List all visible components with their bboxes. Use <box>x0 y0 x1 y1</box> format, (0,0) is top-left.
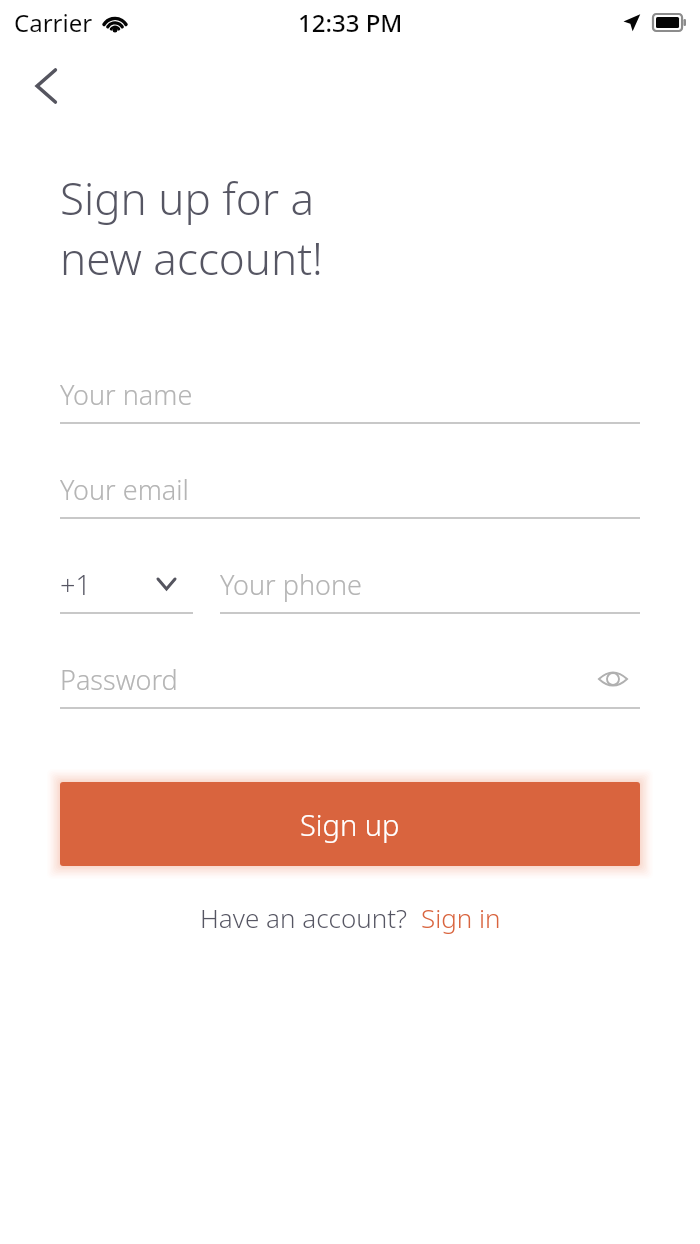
staticText: Carrier <box>14 6 93 39</box>
staticText: Sign up for a <box>60 168 315 228</box>
staticText: 12:33 PM <box>298 6 403 39</box>
staticText: new account! <box>60 228 323 288</box>
button[interactable]: Your email <box>60 461 640 519</box>
button[interactable]: Your name <box>60 366 640 424</box>
button[interactable]: +1 <box>60 556 193 614</box>
staticText: Sign up <box>300 805 400 844</box>
staticText: Your name <box>60 376 193 413</box>
staticText: Your phone <box>220 566 362 603</box>
button[interactable]: Back <box>14 54 78 118</box>
button[interactable]: Your phone <box>220 556 640 614</box>
staticText: Have an account? <box>200 900 408 935</box>
button[interactable]: Sign up <box>60 782 640 866</box>
button[interactable]: Password <box>60 651 640 707</box>
staticText: +1 <box>60 566 91 603</box>
staticText: Password <box>60 661 178 698</box>
button[interactable]: Sign in <box>421 900 501 935</box>
staticText: Your email <box>60 471 189 508</box>
button[interactable]: Show password <box>586 652 640 706</box>
staticText: Sign in <box>421 900 501 935</box>
